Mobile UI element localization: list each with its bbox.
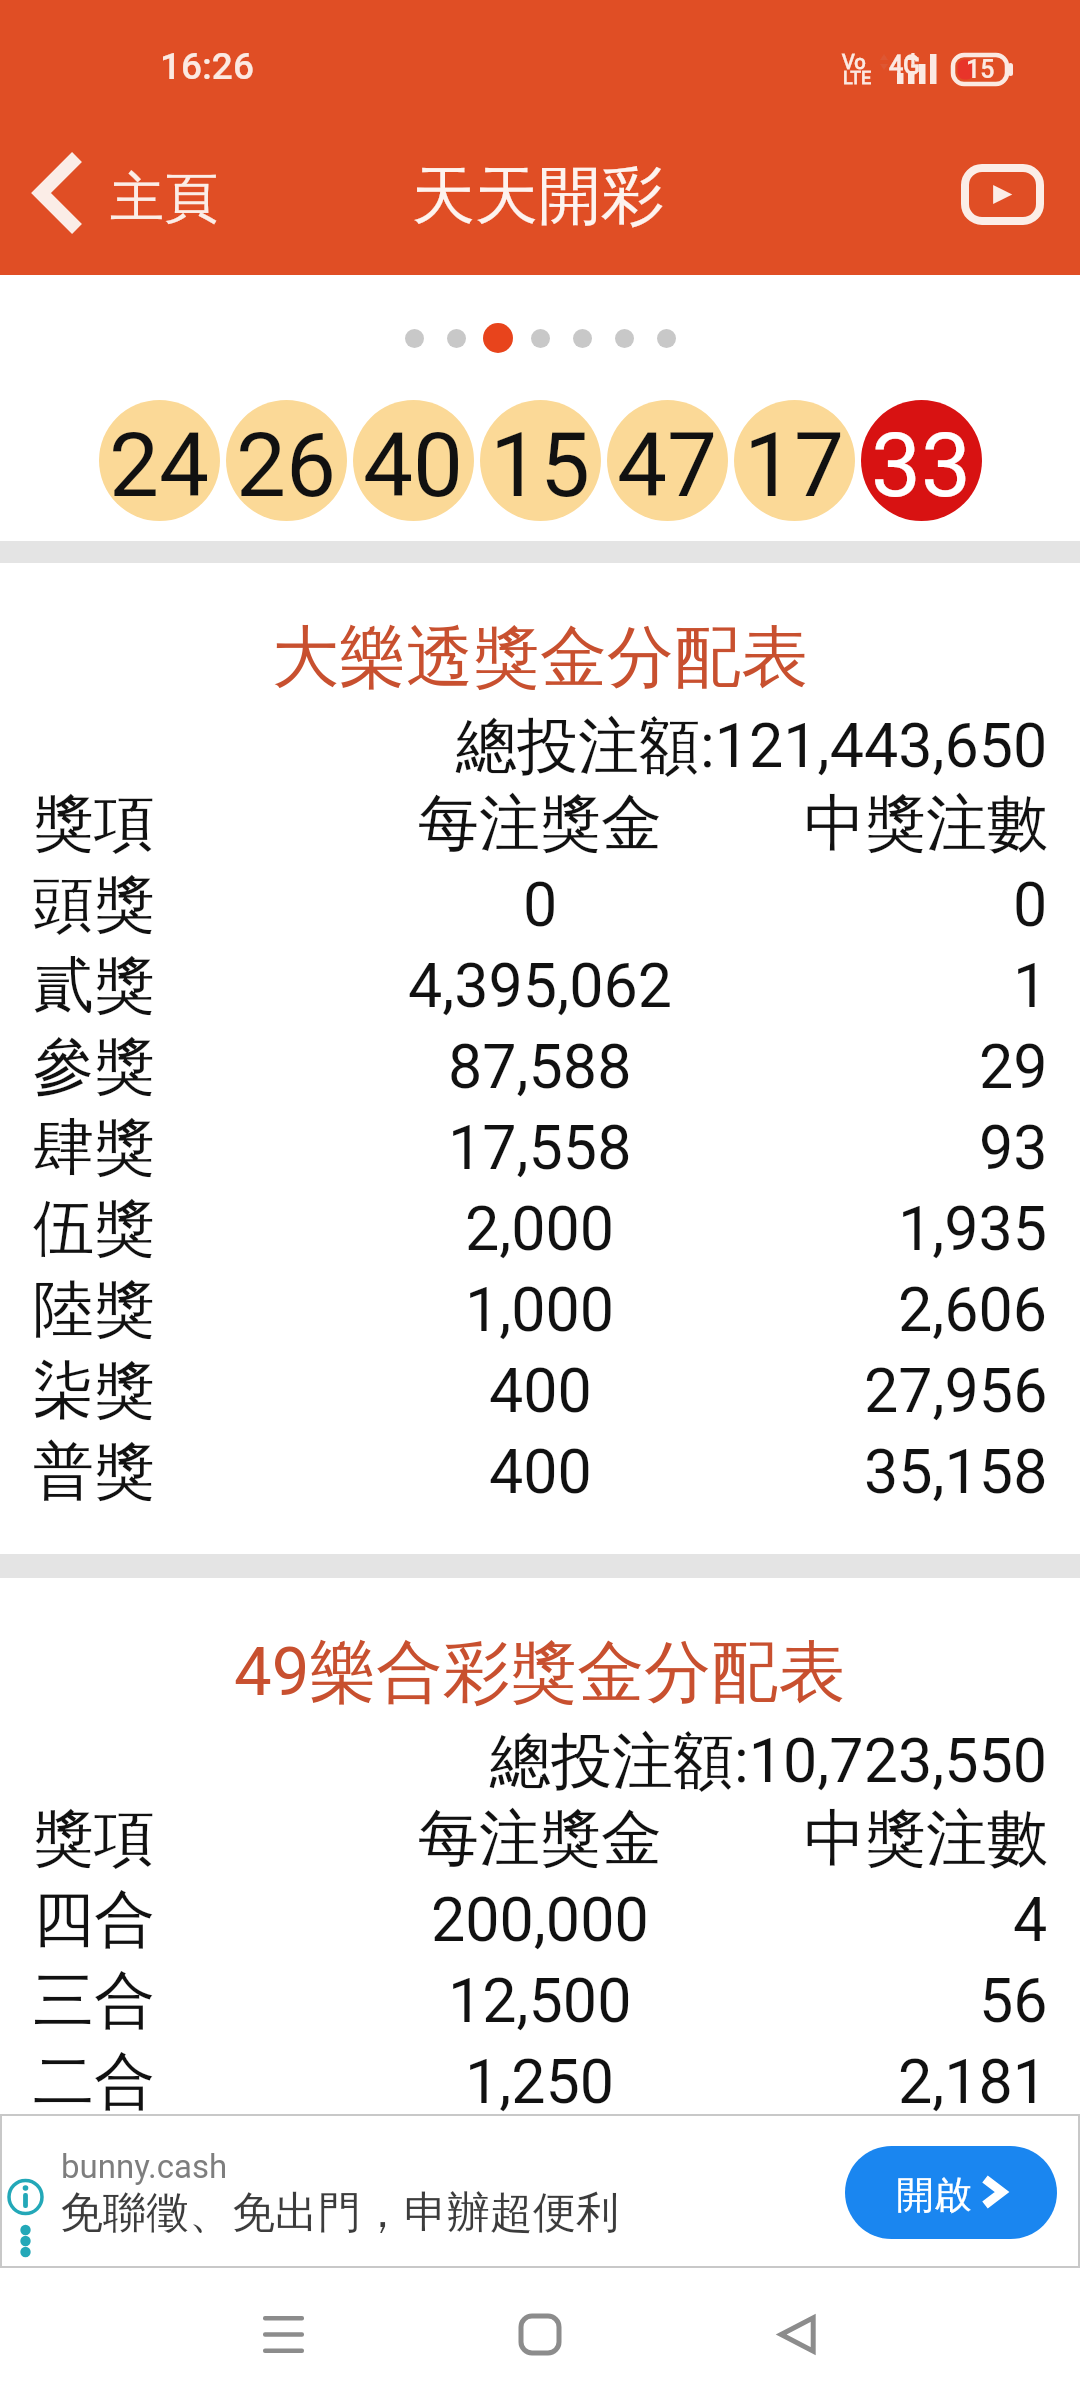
staticText: 陸獎 (33, 1271, 155, 1348)
staticText: 1,250 (465, 2046, 615, 2117)
staticText: 1,935 (898, 1193, 1048, 1264)
button[interactable]: bunny.cash (0, 2114, 1080, 2268)
staticText: 中獎注數 (804, 785, 1048, 862)
staticText: 三合 (33, 1962, 155, 2039)
staticText: 35,158 (864, 1436, 1048, 1507)
button[interactable]: 開啟 (845, 2146, 1057, 2239)
staticText: + (907, 46, 919, 71)
staticText: 頭獎 (33, 866, 155, 943)
staticText: 獎項 (33, 1800, 155, 1877)
staticText: 柒獎 (33, 1352, 155, 1429)
button[interactable]: Page 5 (561, 317, 603, 359)
staticText: 中獎注數 (804, 1800, 1048, 1877)
staticText: 49樂合彩獎金分配表 (234, 1630, 846, 1714)
staticText: 93 (979, 1112, 1048, 1183)
staticText: 總投注額:10,723,550 (490, 1723, 1048, 1800)
button[interactable]: 33 (861, 400, 982, 521)
staticText: 17 (744, 413, 845, 517)
staticText: 15 (490, 413, 591, 517)
staticText: 400 (489, 1355, 592, 1426)
button[interactable]: 26 (226, 400, 347, 521)
staticText: 主頁 (110, 164, 218, 232)
staticText: 2,606 (898, 1274, 1048, 1345)
staticText: 27,956 (864, 1355, 1048, 1426)
staticText: 天天開彩 (412, 156, 664, 235)
staticText: 普獎 (33, 1433, 155, 1510)
staticText: 16:26 (160, 45, 254, 88)
staticText: 大樂透獎金分配表 (272, 615, 808, 699)
button[interactable]: 47 (607, 400, 728, 521)
staticText: 1,000 (465, 1274, 615, 1345)
staticText: 開啟 (896, 2171, 972, 2219)
staticText: 伍獎 (33, 1190, 155, 1267)
button[interactable]: Back (737, 2268, 857, 2400)
button[interactable]: Page 2 (435, 317, 477, 359)
staticText: 40 (363, 413, 464, 517)
button[interactable]: Page 6 (603, 317, 645, 359)
staticText: 總投注額:121,443,650 (456, 708, 1048, 785)
staticText: 200,000 (431, 1884, 649, 1955)
button[interactable]: 24 (99, 400, 220, 521)
staticText: 400 (489, 1436, 592, 1507)
button[interactable]: Home (480, 2268, 600, 2400)
button[interactable]: 40 (353, 400, 474, 521)
staticText: 免聯徵、免出門，申辦超便利 (60, 2186, 619, 2240)
staticText: 貳獎 (33, 947, 155, 1024)
staticText: 肆獎 (33, 1109, 155, 1186)
staticText: LTE (843, 67, 872, 88)
staticText: 每注獎金 (418, 1800, 662, 1877)
button[interactable]: 17 (734, 400, 855, 521)
staticText: Vo (842, 50, 866, 73)
staticText: 4,395,062 (408, 950, 672, 1021)
staticText: 26 (236, 413, 337, 517)
staticText: 參獎 (33, 1028, 155, 1105)
button[interactable]: 15 (480, 400, 601, 521)
staticText: 17,558 (448, 1112, 632, 1183)
staticText: 0 (523, 869, 558, 940)
button[interactable]: YouTube (941, 141, 1064, 248)
staticText: 87,588 (448, 1031, 632, 1102)
staticText: 二合 (33, 2043, 155, 2120)
button[interactable]: Recent apps (223, 2268, 343, 2400)
staticText: 2,000 (465, 1193, 615, 1264)
button[interactable]: Page 3 (477, 317, 519, 359)
staticText: 2,181 (898, 2046, 1048, 2117)
button[interactable]: Page 7 (645, 317, 687, 359)
staticText: 33 (871, 413, 972, 517)
staticText: 47 (617, 413, 718, 517)
staticText: 0 (1013, 869, 1048, 940)
staticText: 1 (1013, 950, 1048, 1021)
button[interactable]: Page 4 (519, 317, 561, 359)
button[interactable]: 主頁 (0, 120, 246, 265)
staticText: 24 (109, 413, 210, 517)
staticText: 獎項 (33, 785, 155, 862)
staticText: 每注獎金 (418, 785, 662, 862)
button[interactable]: Page 1 (393, 317, 435, 359)
staticText: bunny.cash (61, 2147, 228, 2186)
staticText: 四合 (33, 1881, 155, 1958)
staticText: 15 (966, 55, 995, 84)
staticText: 4G (889, 51, 921, 80)
staticText: 4 (1013, 1884, 1048, 1955)
staticText: 56 (979, 1965, 1048, 2036)
staticText: 12,500 (448, 1965, 632, 2036)
staticText: 29 (979, 1031, 1048, 1102)
